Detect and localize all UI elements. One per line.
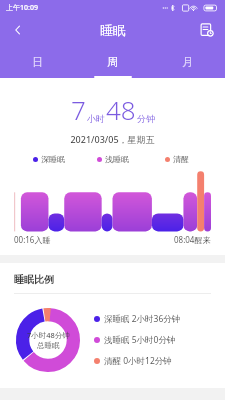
button[interactable]: 返回 bbox=[6, 18, 30, 42]
staticText: 48 bbox=[106, 92, 136, 127]
staticText: 清醒 0小时12分钟 bbox=[104, 355, 172, 367]
staticText: 08:04醒来 bbox=[174, 234, 211, 245]
staticText: 分钟 bbox=[137, 113, 155, 124]
staticText: 清醒 bbox=[173, 154, 189, 164]
staticText: 深睡眠 2小时36分钟 bbox=[104, 313, 181, 325]
staticText: 7小时48分钟 bbox=[27, 330, 70, 340]
staticText: 浅睡眠 5小时0分钟 bbox=[104, 334, 176, 346]
staticText: 周 bbox=[107, 55, 118, 69]
staticText: 日 bbox=[32, 55, 43, 69]
staticText: 上午10:09 bbox=[6, 3, 38, 13]
staticText: 2021/03/05，星期五 bbox=[0, 133, 225, 145]
staticText: 睡眠比例 bbox=[14, 273, 54, 286]
staticText: 00:16入睡 bbox=[14, 234, 51, 245]
staticText: 月 bbox=[182, 55, 193, 69]
staticText: 深睡眠 bbox=[41, 154, 65, 164]
staticText: 7 bbox=[71, 92, 86, 127]
button[interactable]: 周 bbox=[75, 45, 150, 78]
button[interactable]: 日 bbox=[0, 45, 75, 78]
staticText: 睡眠 bbox=[100, 22, 126, 38]
staticText: 浅睡眠 bbox=[105, 154, 129, 164]
button[interactable]: 月 bbox=[150, 45, 225, 78]
button[interactable]: 睡眠报告 bbox=[195, 18, 219, 42]
staticText: 小时 bbox=[87, 113, 105, 124]
staticText: 总睡眠 bbox=[37, 341, 60, 350]
